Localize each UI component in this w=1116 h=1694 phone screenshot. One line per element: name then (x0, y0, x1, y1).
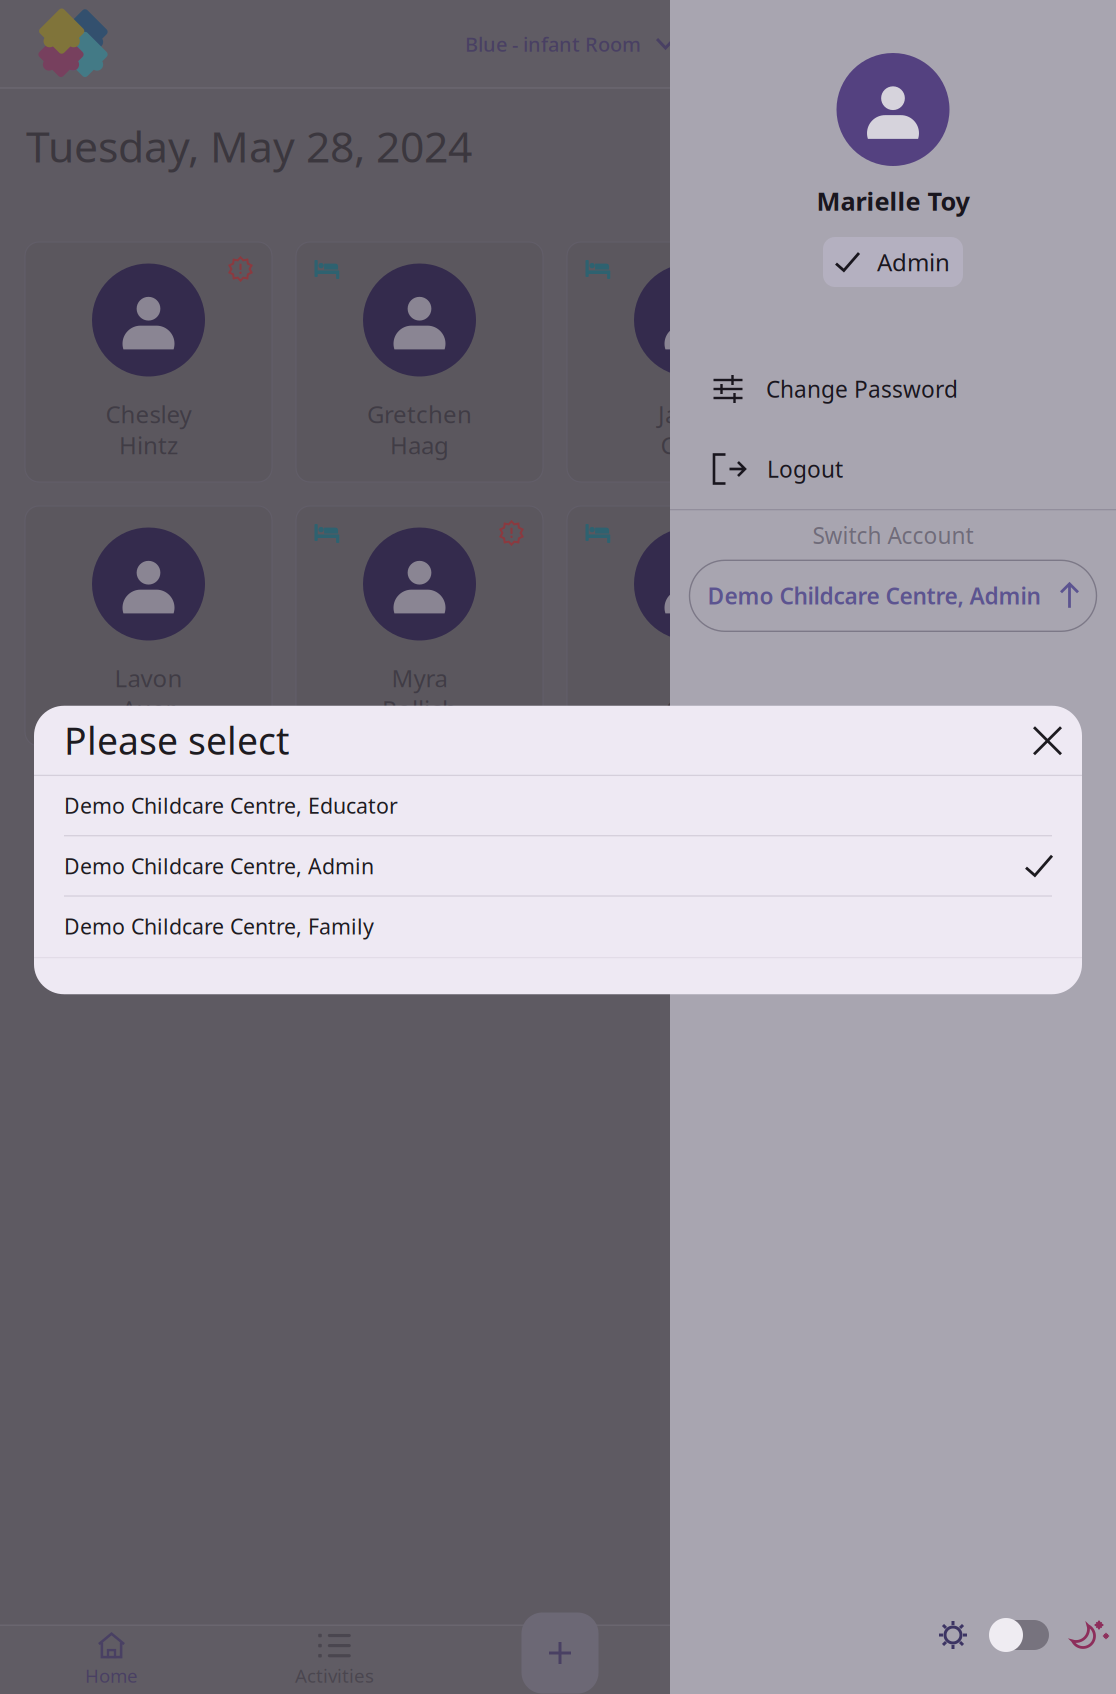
staticText: Admin (877, 246, 950, 278)
button[interactable]: Logout (670, 443, 1116, 495)
staticText: Marielle Toy (816, 184, 969, 218)
button[interactable]: Gretchen (296, 242, 543, 482)
button[interactable]: Kiel (838, 242, 1085, 482)
button[interactable]: Home (0, 1626, 223, 1694)
staticText: Change Password (766, 374, 958, 404)
staticText: Demo Childcare Centre, Admin (707, 581, 1040, 611)
staticText: Blue - infant Room (465, 31, 641, 57)
button[interactable]: Activities (223, 1626, 446, 1694)
staticText: Logout (767, 454, 843, 484)
staticText: Tuesday, May 28, 2024 (26, 118, 472, 174)
staticText: Gretchen (367, 398, 472, 430)
staticText: Demo Childcare Centre, Family (64, 912, 374, 940)
staticText: Demo Childcare Centre, Educator (64, 791, 398, 820)
button[interactable]: Change Password (670, 363, 1116, 415)
button[interactable]: Add (521, 1612, 598, 1693)
staticText: Please select (64, 715, 289, 765)
button[interactable]: Dark mode (1071, 1619, 1105, 1651)
button[interactable]: Tito (838, 506, 1085, 746)
staticText: Switch Account (812, 520, 973, 550)
staticText: Haag (390, 429, 449, 461)
button[interactable]: Demo Childcare Centre, Educator (34, 776, 1082, 836)
staticText: Jaclyn (658, 398, 723, 430)
staticText: Demo Childcare Centre, Admin (64, 852, 374, 880)
staticText: Conn (660, 429, 720, 461)
button[interactable]: Demo Childcare Centre, Family (34, 897, 1082, 957)
button[interactable]: Demo Childcare Centre, Admin (34, 836, 1082, 897)
staticText: Cole (665, 693, 715, 725)
button[interactable]: Chesley (25, 242, 272, 482)
button[interactable]: Blue - infant Room (465, 31, 1116, 57)
staticText: Myra (391, 662, 447, 694)
button[interactable]: Light mode (937, 1620, 969, 1650)
staticText: Pollich (382, 693, 457, 725)
button[interactable]: Myra (296, 506, 543, 746)
staticText: Chesley (105, 398, 191, 430)
button[interactable]: Toggle appearance (991, 1618, 1049, 1652)
button[interactable]: Demo Childcare Centre, Admin (689, 560, 1096, 631)
staticText: Auer (121, 693, 175, 725)
button[interactable]: Jaclyn (567, 242, 814, 482)
staticText: Lowe (931, 693, 991, 725)
staticText: Home (85, 1663, 138, 1688)
staticText: Lavon (114, 662, 182, 694)
staticText: Hintz (119, 429, 178, 461)
button[interactable]: Rey (567, 506, 814, 746)
button[interactable]: Lavon (25, 506, 272, 746)
button[interactable]: Close (1016, 709, 1078, 771)
staticText: Activities (295, 1663, 374, 1688)
